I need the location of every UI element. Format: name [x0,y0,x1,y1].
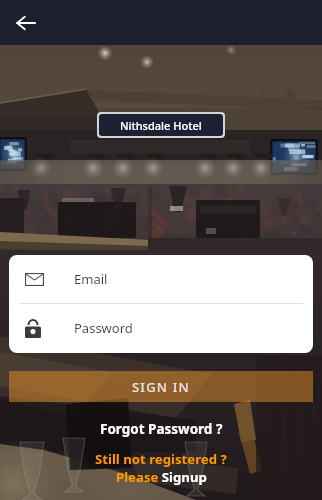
button[interactable]: Email [9,255,313,303]
button[interactable]: Forgot Password ? [0,420,322,438]
button[interactable]: SIGN IN [9,371,313,402]
staticText: Nithsdale Hotel [120,118,202,133]
staticText: SIGN IN [132,378,190,396]
button[interactable]: Still not registered ? [0,450,322,486]
staticText: Password [74,319,133,337]
button[interactable]: Nithsdale Hotel [99,114,223,136]
staticText: Forgot Password ? [100,420,223,438]
staticText: Please Signup [116,468,207,486]
staticText: Email [74,270,108,288]
button[interactable]: Back [10,7,42,39]
staticText: Still not registered ? [95,450,227,468]
button[interactable]: Password [9,304,313,352]
